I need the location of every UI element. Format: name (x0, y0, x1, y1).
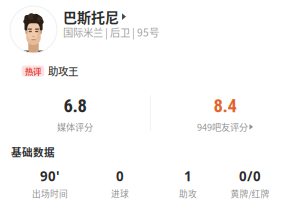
staticText: 黄牌/红牌 (230, 187, 269, 200)
button[interactable]: 巴斯托尼 (63, 6, 126, 27)
staticText: 949吧友评分 (197, 120, 248, 133)
staticText: 0 (116, 167, 124, 185)
staticText: 1 (184, 167, 192, 185)
staticText: 助攻 (179, 187, 197, 200)
staticText: 国际米兰 | 后卫 | 95号 (63, 24, 159, 39)
staticText: 助攻王 (48, 63, 78, 78)
staticText: 巴斯托尼 (63, 6, 119, 27)
staticText: 媒体评分 (57, 120, 93, 133)
button[interactable]: 949吧友评分 (197, 120, 253, 133)
staticText: 8.4 (213, 95, 236, 117)
staticText: 进球 (111, 187, 129, 200)
staticText: 0/0 (239, 167, 261, 185)
staticText: 出场时间 (32, 187, 68, 200)
staticText: 90' (40, 167, 60, 185)
staticText: 热评 (25, 65, 41, 77)
staticText: 基础数据 (11, 144, 55, 159)
staticText: 6.8 (63, 95, 86, 117)
